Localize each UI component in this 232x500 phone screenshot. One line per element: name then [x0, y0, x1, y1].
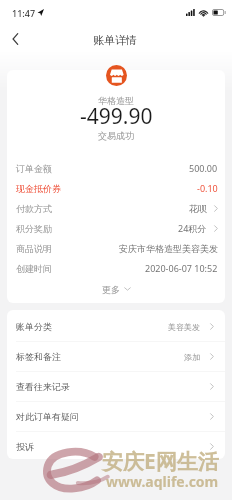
staticText: -0.10 [197, 182, 218, 194]
staticText: 对此订单有疑问 [16, 411, 79, 422]
staticText: 安庆E网生活 [102, 447, 219, 476]
staticText: 订单金额 [16, 163, 52, 174]
staticText: 创建时间 [16, 263, 52, 274]
staticText: 花呗 [189, 203, 207, 214]
button[interactable]: 积分奖励 [7, 218, 225, 238]
staticText: 查看往来记录 [16, 381, 70, 392]
button[interactable]: 查看往来记录 [7, 372, 225, 401]
staticText: -499.90 [80, 102, 153, 131]
button[interactable]: 投诉 [7, 432, 225, 459]
staticText: 11:47 [12, 7, 36, 19]
staticText: 标签和备注 [16, 351, 61, 362]
staticText: 投诉 [16, 441, 34, 452]
staticText: 账单分类 [16, 321, 52, 332]
staticText: 积分奖励 [16, 223, 52, 234]
staticText: 24积分 [178, 222, 207, 234]
staticText: 华格造型 [98, 95, 134, 106]
button[interactable]: 付款方式 [7, 198, 225, 218]
staticText: 商品说明 [16, 243, 52, 254]
staticText: 添加 [184, 352, 200, 362]
button[interactable]: 更多 [7, 278, 225, 300]
button[interactable]: 创建时间 [7, 258, 225, 278]
button[interactable]: 现金抵价券 [7, 178, 225, 198]
button[interactable]: 对此订单有疑问 [7, 402, 225, 431]
button[interactable]: 标签和备注 [7, 342, 225, 371]
button[interactable]: Back [4, 28, 26, 50]
staticText: 500.00 [189, 162, 218, 174]
staticText: 现金抵价券 [16, 183, 61, 194]
button[interactable]: 商品说明 [7, 238, 225, 258]
staticText: 2020-06-07 10:52 [145, 262, 218, 274]
staticText: 美容美发 [168, 322, 200, 332]
staticText: 更多 [102, 284, 120, 295]
button[interactable]: 订单金额 [7, 158, 225, 178]
staticText: 安庆市华格造型美容美发 [119, 243, 218, 254]
staticText: www.aqlife.com [106, 472, 219, 491]
staticText: 付款方式 [16, 203, 52, 214]
staticText: 账单详情 [93, 33, 137, 47]
staticText: 交易成功 [98, 130, 134, 141]
button[interactable]: 账单分类 [7, 312, 225, 341]
